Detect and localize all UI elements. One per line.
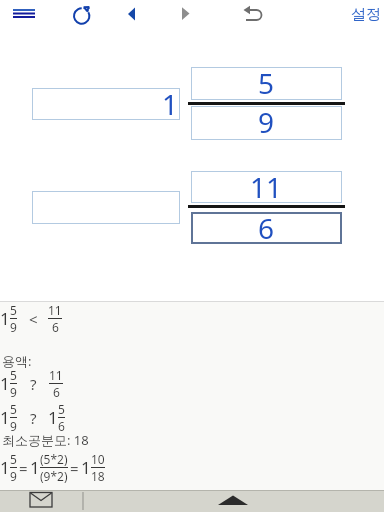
staticText: (5*2) [40, 451, 68, 467]
staticText: 최소공분모: 18 [2, 431, 89, 449]
staticText: 6 [258, 209, 275, 241]
staticText: 18 [91, 468, 105, 484]
staticText: 5 [258, 64, 275, 97]
staticText: 1 [48, 406, 58, 429]
staticText: < [29, 309, 38, 329]
button[interactable]: 1 [32, 88, 180, 120]
staticText: 5 [10, 401, 17, 417]
staticText: = [70, 458, 79, 478]
staticText: 1 [0, 372, 10, 395]
staticText: 1 [162, 85, 179, 117]
staticText: 9 [10, 384, 17, 400]
button[interactable]: 9 [191, 106, 342, 140]
staticText: 5 [10, 367, 17, 383]
staticText: 9 [10, 319, 17, 335]
button[interactable]: 11 [191, 171, 342, 203]
button[interactable] [32, 191, 180, 224]
staticText: 6 [53, 384, 60, 400]
staticText: 1 [0, 456, 10, 479]
staticText: 11 [48, 302, 62, 318]
staticText: 1 [30, 456, 40, 479]
staticText: 1 [0, 307, 10, 330]
staticText: 6 [58, 418, 65, 434]
staticText: 6 [52, 319, 59, 335]
staticText: 10 [91, 451, 105, 467]
button[interactable] [0, 491, 83, 512]
staticText: 5 [10, 451, 17, 467]
button[interactable]: 5 [191, 67, 342, 100]
button[interactable]: 6 [191, 212, 342, 244]
staticText: ? [30, 374, 37, 394]
staticText: = [19, 458, 28, 478]
button[interactable] [122, 2, 142, 28]
staticText: 5 [10, 302, 17, 318]
staticText: 9 [10, 468, 17, 484]
staticText: 11 [250, 168, 283, 200]
button[interactable]: 설정 [348, 2, 384, 26]
staticText: 설정 [351, 5, 381, 24]
button[interactable] [68, 2, 96, 28]
button[interactable] [177, 2, 197, 28]
staticText: 1 [81, 456, 91, 479]
staticText: 용액: [2, 352, 32, 370]
staticText: 5 [58, 401, 65, 417]
button[interactable] [180, 491, 285, 512]
staticText: (9*2) [40, 468, 68, 484]
staticText: ? [30, 408, 37, 428]
button[interactable] [240, 2, 266, 28]
staticText: 11 [49, 367, 63, 383]
staticText: 9 [10, 418, 17, 434]
staticText: 1 [0, 406, 10, 429]
staticText: 9 [258, 103, 275, 137]
button[interactable] [8, 2, 40, 28]
